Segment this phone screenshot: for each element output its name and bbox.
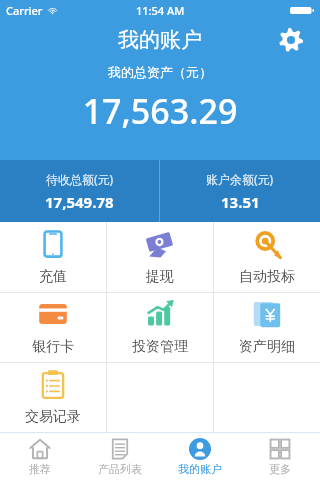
staticText: 我的账户 <box>178 462 222 476</box>
staticText: 产品列表 <box>98 462 142 476</box>
staticText: 11:54 AM <box>136 3 185 18</box>
button[interactable]: 自动投标 <box>213 222 320 292</box>
staticText: Carrier <box>6 3 43 18</box>
staticText: 充值 <box>39 268 67 286</box>
button[interactable]: 投资管理 <box>106 293 213 362</box>
button[interactable]: 交易记录 <box>0 363 106 432</box>
button[interactable]: 账户余额(元) <box>160 160 320 222</box>
staticText: 我的总资产（元） <box>0 64 320 80</box>
button[interactable]: 推荐 <box>0 433 80 480</box>
staticText: 我的账户 <box>118 27 202 53</box>
button[interactable]: 产品列表 <box>80 433 160 480</box>
button[interactable]: 资产明细 <box>213 293 320 362</box>
staticText: 更多 <box>269 462 291 476</box>
staticText: 交易记录 <box>25 408 81 426</box>
button[interactable]: 银行卡 <box>0 293 106 362</box>
staticText: 账户余额(元) <box>206 171 274 187</box>
button[interactable]: 待收总额(元) <box>0 160 159 222</box>
staticText: 资产明细 <box>239 338 295 356</box>
staticText: 17,563.29 <box>0 88 320 134</box>
staticText: 推荐 <box>29 462 51 476</box>
staticText: 13.51 <box>221 192 260 212</box>
staticText: 17,549.78 <box>45 192 114 212</box>
button[interactable]: 更多 <box>240 433 320 480</box>
staticText: 银行卡 <box>32 338 74 356</box>
staticText: 自动投标 <box>239 268 295 286</box>
button[interactable]: 提现 <box>106 222 213 292</box>
button[interactable]: 我的账户 <box>160 433 240 480</box>
staticText: 投资管理 <box>132 338 188 356</box>
staticText: 待收总额(元) <box>46 171 114 187</box>
staticText: 提现 <box>146 268 174 286</box>
button[interactable]: Settings <box>274 23 308 57</box>
button[interactable]: 充值 <box>0 222 106 292</box>
